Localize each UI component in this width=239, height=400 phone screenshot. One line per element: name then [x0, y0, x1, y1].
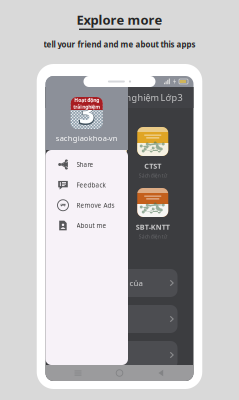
staticText: SBT-KNTT	[136, 222, 170, 232]
staticText: Hoạt động	[74, 97, 99, 103]
staticText: TA	[65, 222, 74, 232]
button[interactable]: About me	[45, 215, 128, 236]
button[interactable]: CTST	[132, 127, 173, 182]
staticText: CTST	[144, 161, 161, 171]
button[interactable]	[52, 305, 177, 333]
staticText: tell your friend and me about this apps	[43, 39, 195, 50]
staticText: sachgiaokhoa-vn	[56, 133, 118, 143]
button[interactable]: Recents	[69, 363, 87, 382]
staticText: Sách theo sở thích của	[59, 278, 142, 288]
staticText: 3	[79, 94, 95, 132]
staticText: Sách điện tử	[139, 172, 167, 179]
button[interactable]: KNTT	[90, 127, 132, 182]
button[interactable]: Share	[45, 154, 128, 175]
button[interactable]: TA	[49, 188, 90, 243]
staticText: About me	[76, 221, 106, 230]
staticText: TV	[65, 161, 74, 171]
staticText: nghiệm Lớp3	[125, 91, 182, 104]
button[interactable]: SBT-KNTT	[132, 188, 173, 243]
staticText: trải nghiệm	[73, 103, 100, 110]
button[interactable]: TV	[49, 127, 90, 182]
button[interactable]: SGK	[90, 188, 132, 243]
button[interactable]: Feedback	[45, 175, 128, 195]
staticText: Explore more	[76, 11, 162, 29]
staticText: Share	[76, 160, 93, 169]
staticText: Sách điện tử	[139, 233, 167, 240]
staticText: Feedback	[76, 181, 105, 189]
button[interactable]: Home	[110, 363, 128, 382]
button[interactable]: Back	[152, 363, 170, 382]
button[interactable]: Remove Ads	[45, 195, 128, 215]
staticText: Remove Ads	[76, 201, 114, 209]
staticText: SGK	[104, 222, 118, 232]
button[interactable]: Sách theo sở thích của	[52, 269, 177, 297]
staticText: 3	[79, 94, 95, 132]
button[interactable]	[52, 341, 177, 369]
